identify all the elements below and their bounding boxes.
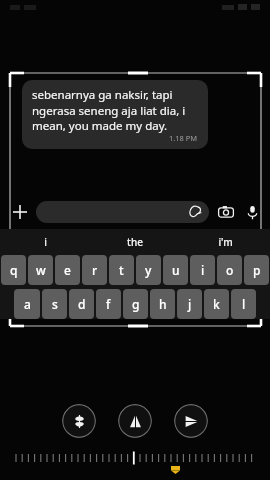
button[interactable]: j — [177, 289, 202, 319]
button[interactable]: e — [55, 255, 80, 285]
staticText: o — [226, 262, 234, 278]
button[interactable]: Voice message — [240, 200, 264, 224]
button[interactable]: y — [136, 255, 161, 285]
staticText: e — [64, 262, 71, 278]
staticText: w — [36, 262, 46, 278]
button[interactable]: w — [28, 255, 53, 285]
button[interactable]: the — [90, 229, 180, 255]
staticText: j — [188, 296, 192, 312]
staticText: 1.18 PM — [169, 133, 198, 143]
button[interactable]: Flip horizontal — [174, 404, 208, 438]
button[interactable]: Camera — [214, 200, 238, 224]
staticText: y — [145, 262, 152, 278]
button[interactable]: i — [190, 255, 215, 285]
button[interactable]: g — [123, 289, 148, 319]
button[interactable]: Crop — [62, 404, 96, 438]
button[interactable]: q — [1, 255, 26, 285]
staticText: f — [106, 296, 111, 312]
button[interactable]: Message — [36, 201, 209, 223]
staticText: i'm — [218, 235, 233, 249]
button[interactable]: o — [217, 255, 242, 285]
staticText: p — [253, 262, 261, 278]
button[interactable]: l — [231, 289, 256, 319]
button[interactable]: f — [96, 289, 121, 319]
staticText: r — [92, 262, 98, 278]
staticText: sebenarnya ga naksir, tapi ngerasa senen… — [32, 87, 198, 133]
staticText: d — [78, 296, 86, 312]
staticText: a — [24, 296, 31, 312]
staticText: s — [52, 296, 58, 312]
staticText: i — [44, 235, 47, 249]
staticText: the — [127, 235, 143, 249]
staticText: q — [10, 262, 18, 278]
staticText: t — [119, 262, 124, 278]
button[interactable]: h — [150, 289, 175, 319]
button[interactable]: a — [14, 289, 40, 319]
button[interactable]: Add attachment — [8, 200, 32, 224]
button[interactable]: Flip vertical — [118, 404, 152, 438]
staticText: h — [159, 296, 167, 312]
button[interactable]: d — [69, 289, 94, 319]
staticText: k — [213, 296, 220, 312]
button[interactable]: p — [244, 255, 269, 285]
button[interactable]: t — [109, 255, 134, 285]
button[interactable]: i — [0, 229, 90, 255]
staticText: g — [132, 296, 140, 312]
button[interactable]: r — [82, 255, 107, 285]
staticText: l — [242, 296, 246, 312]
button[interactable]: Sticker — [186, 203, 204, 221]
button[interactable]: s — [42, 289, 67, 319]
button[interactable]: u — [163, 255, 188, 285]
button[interactable]: sebenarnya ga naksir, tapi ngerasa senen… — [22, 80, 208, 149]
button[interactable]: k — [204, 289, 229, 319]
staticText: i — [201, 262, 205, 278]
staticText: u — [172, 262, 180, 278]
button[interactable]: i'm — [180, 229, 270, 255]
